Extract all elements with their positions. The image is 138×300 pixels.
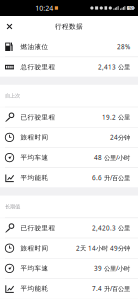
staticText: 2天 14小时 49分钟 — [76, 244, 130, 252]
staticText: 28% — [117, 42, 130, 51]
staticText: 平均车速 — [20, 153, 48, 162]
button[interactable]: 关闭 — [2, 16, 16, 37]
staticText: 行程数据 — [55, 22, 83, 31]
staticText: 2,413 公里 — [98, 63, 130, 71]
staticText: 24分钟 — [110, 133, 130, 142]
button[interactable]: 已行驶里程 — [0, 218, 138, 238]
staticText: 总行驶里程 — [20, 63, 55, 71]
button[interactable]: 平均车速 — [0, 259, 138, 278]
staticText: 平均能耗 — [20, 174, 48, 182]
staticText: 92 — [128, 5, 132, 11]
staticText: 长期值 — [5, 203, 20, 210]
staticText: 自上次 — [5, 92, 20, 99]
staticText: 平均车速 — [20, 264, 48, 272]
staticText: 48 公里/小时 — [94, 153, 130, 162]
staticText: 已行驶里程 — [20, 224, 55, 232]
staticText: 2,420.3 公里 — [92, 224, 130, 232]
button[interactable]: 旅程时间 — [0, 128, 138, 147]
button[interactable]: 平均能耗 — [0, 168, 138, 188]
staticText: 旅程时间 — [20, 133, 48, 141]
button[interactable]: 已行驶里程 — [0, 107, 138, 127]
staticText: 平均能耗 — [20, 284, 48, 293]
staticText: 39 公里/小时 — [94, 264, 130, 273]
button[interactable]: 燃油液位 — [0, 37, 138, 57]
button[interactable]: 总行驶里程 — [0, 57, 138, 77]
staticText: 旅程时间 — [20, 244, 48, 252]
button[interactable]: 旅程时间 — [0, 238, 138, 258]
staticText: 19.2 公里 — [102, 113, 130, 121]
staticText: 6.6 升/百公里 — [92, 173, 130, 182]
button[interactable]: 平均车速 — [0, 148, 138, 167]
button[interactable]: 平均能耗 — [0, 279, 138, 298]
staticText: 已行驶里程 — [20, 113, 55, 121]
staticText: 7.4 升/百公里 — [92, 284, 130, 293]
staticText: 10:24 — [35, 3, 53, 13]
staticText: 燃油液位 — [20, 43, 48, 51]
